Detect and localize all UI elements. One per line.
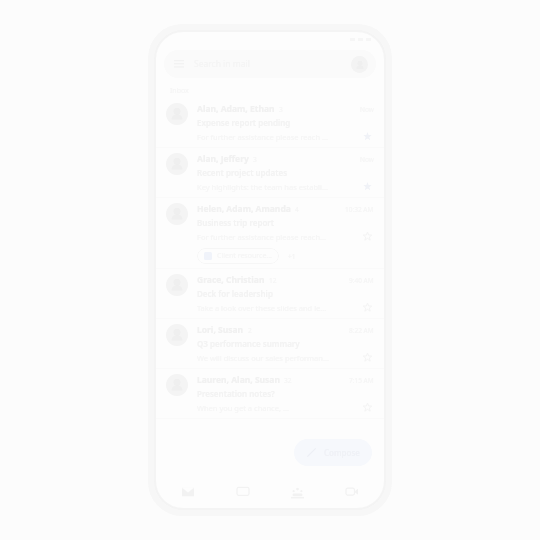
staticText: Grace, Christian — [197, 274, 265, 286]
button[interactable]: Client resource... — [197, 248, 279, 264]
staticText: Recent project updates — [197, 167, 288, 178]
staticText: Alan, Adam, Ethan — [197, 103, 275, 115]
staticText: Helen, Adam, Amanda — [197, 203, 291, 215]
staticText: Deck for leadership — [197, 288, 273, 299]
button[interactable]: Account — [351, 56, 368, 73]
staticText: Presentation notes? — [197, 388, 275, 399]
staticText: Q3 performance summary — [197, 338, 300, 349]
button[interactable]: Star — [361, 130, 374, 143]
staticText: Business trip report — [197, 217, 275, 228]
button[interactable]: Star — [361, 180, 374, 193]
staticText: Lori, Susan — [197, 324, 244, 336]
staticText: Lauren, Alan, Susan — [197, 374, 280, 386]
staticText: Alan, Jeffery — [197, 153, 249, 165]
staticText: Expense report pending — [197, 117, 291, 128]
